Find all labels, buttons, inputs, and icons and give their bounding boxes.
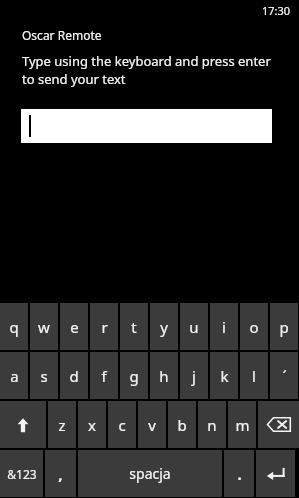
button[interactable]: spacja <box>78 450 222 497</box>
button[interactable]: k <box>210 352 238 399</box>
button[interactable]: j <box>180 352 208 399</box>
button[interactable]: , <box>45 450 76 497</box>
staticText: c <box>118 415 126 435</box>
staticText: y <box>160 317 168 337</box>
button[interactable]: l <box>240 352 268 399</box>
staticText: l <box>252 366 256 386</box>
staticText: u <box>189 317 199 337</box>
button[interactable]: n <box>198 401 226 448</box>
staticText: i <box>222 317 226 337</box>
staticText: j <box>192 366 196 386</box>
staticText: Type using the keyboard and press enter … <box>22 52 277 88</box>
staticText: n <box>207 415 217 435</box>
button[interactable]: m <box>228 401 256 448</box>
staticText: ´ <box>282 366 287 386</box>
button[interactable]: Backspace <box>258 401 299 448</box>
staticText: m <box>235 415 250 435</box>
staticText: r <box>101 317 108 337</box>
button[interactable]: &123 <box>0 450 43 497</box>
button[interactable]: t <box>120 303 148 350</box>
button[interactable]: a <box>0 352 28 399</box>
button[interactable]: s <box>30 352 58 399</box>
staticText: k <box>220 366 229 386</box>
button[interactable]: Enter <box>256 450 295 497</box>
staticText: v <box>148 415 156 435</box>
staticText: q <box>9 317 19 337</box>
button[interactable]: z <box>48 401 76 448</box>
staticText: 17:30 <box>262 3 291 18</box>
staticText: f <box>101 366 107 386</box>
staticText: , <box>58 464 63 484</box>
button[interactable]: h <box>150 352 178 399</box>
button[interactable]: Shift <box>0 401 46 448</box>
button[interactable]: c <box>108 401 136 448</box>
button[interactable]: ´ <box>270 352 298 399</box>
staticText: Oscar Remote <box>22 27 102 43</box>
staticText: h <box>159 366 169 386</box>
button[interactable]: y <box>150 303 178 350</box>
staticText: x <box>88 415 96 435</box>
staticText: w <box>38 317 50 337</box>
button[interactable]: o <box>240 303 268 350</box>
staticText: d <box>69 366 79 386</box>
staticText: o <box>249 317 259 337</box>
button[interactable]: e <box>60 303 88 350</box>
button[interactable]: f <box>90 352 118 399</box>
staticText: z <box>58 415 66 435</box>
button[interactable]: v <box>138 401 166 448</box>
staticText: p <box>279 317 289 337</box>
staticText: b <box>177 415 187 435</box>
button[interactable]: p <box>270 303 298 350</box>
staticText: s <box>40 366 48 386</box>
staticText: t <box>131 317 137 337</box>
button[interactable] <box>21 109 272 143</box>
staticText: e <box>70 317 79 337</box>
button[interactable]: r <box>90 303 118 350</box>
button[interactable]: . <box>224 450 254 497</box>
staticText: &123 <box>7 466 37 482</box>
staticText: . <box>237 464 242 484</box>
button[interactable]: i <box>210 303 238 350</box>
button[interactable]: d <box>60 352 88 399</box>
button[interactable]: q <box>0 303 28 350</box>
button[interactable]: g <box>120 352 148 399</box>
button[interactable]: b <box>168 401 196 448</box>
button[interactable]: w <box>30 303 58 350</box>
button[interactable]: u <box>180 303 208 350</box>
staticText: a <box>10 366 19 386</box>
staticText: g <box>129 366 139 386</box>
staticText: spacja <box>129 464 171 483</box>
button[interactable]: x <box>78 401 106 448</box>
